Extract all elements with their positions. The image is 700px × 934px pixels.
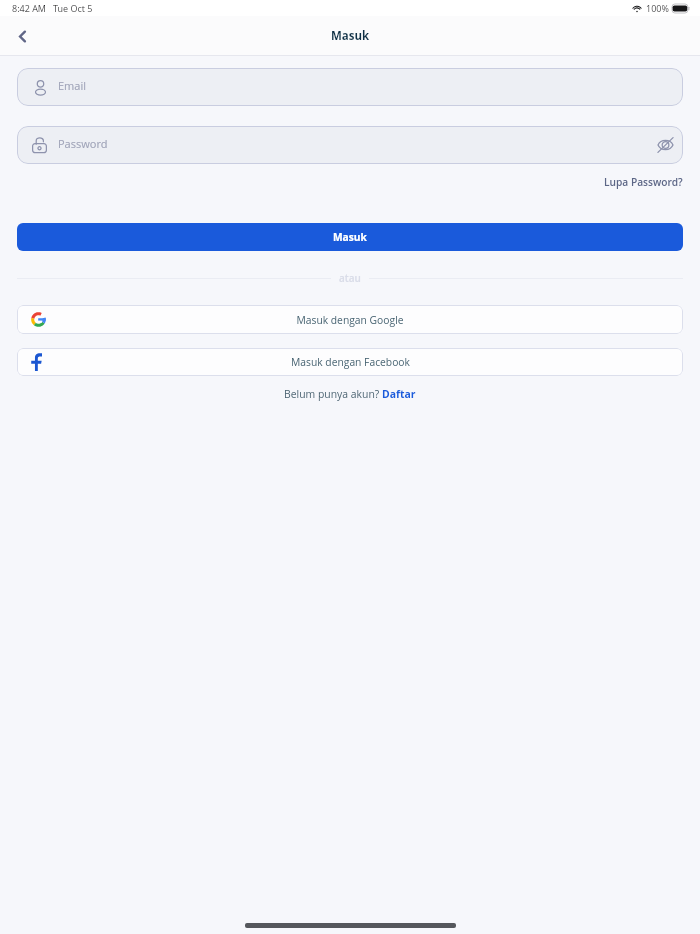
staticText: Password: [58, 136, 108, 151]
button[interactable]: Masuk: [17, 223, 683, 251]
button[interactable]: Masuk dengan Facebook: [17, 348, 683, 376]
staticText: Email: [58, 78, 87, 93]
staticText: Masuk: [331, 28, 370, 44]
button[interactable]: Lupa Password?: [604, 175, 683, 189]
button[interactable]: Masuk dengan Google: [17, 305, 683, 334]
staticText: Tue Oct 5: [53, 2, 93, 14]
staticText: Lupa Password?: [604, 175, 683, 189]
button[interactable]: Email: [17, 68, 683, 106]
button[interactable]: Show password: [656, 134, 674, 156]
button[interactable]: Back: [8, 22, 36, 50]
staticText: 8:42 AM: [12, 2, 46, 14]
staticText: Belum punya akun?: [284, 387, 382, 401]
staticText: Masuk dengan Facebook: [291, 355, 410, 369]
staticText: 100%: [646, 2, 669, 14]
staticText: Masuk: [333, 230, 367, 244]
button[interactable]: Belum punya akun?: [17, 387, 683, 401]
staticText: Masuk dengan Google: [296, 313, 404, 327]
staticText: atau: [339, 271, 361, 285]
button[interactable]: Password: [17, 126, 683, 164]
staticText: Daftar: [382, 387, 416, 401]
